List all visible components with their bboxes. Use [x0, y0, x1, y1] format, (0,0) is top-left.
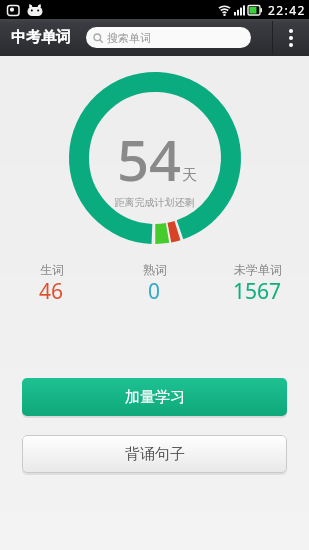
staticText: 熟词: [143, 262, 167, 277]
staticText: 54: [117, 121, 182, 197]
button[interactable]: [272, 19, 309, 56]
staticText: 加量学习: [125, 388, 185, 407]
staticText: 中考单词: [11, 28, 71, 47]
staticText: 未学单词: [234, 262, 282, 277]
staticText: 距离完成计划还剩: [0, 196, 309, 209]
staticText: 生词: [40, 262, 64, 277]
staticText: 天: [182, 166, 197, 185]
staticText: 46: [39, 277, 64, 306]
staticText: 0: [148, 277, 161, 306]
button[interactable]: 加量学习: [22, 378, 287, 416]
staticText: 搜索单词: [107, 31, 151, 45]
staticText: 22:42: [268, 2, 306, 18]
button[interactable]: 背诵句子: [22, 435, 287, 473]
button[interactable]: 搜索单词: [86, 27, 251, 48]
staticText: 1567: [233, 277, 282, 306]
staticText: 背诵句子: [125, 445, 185, 464]
